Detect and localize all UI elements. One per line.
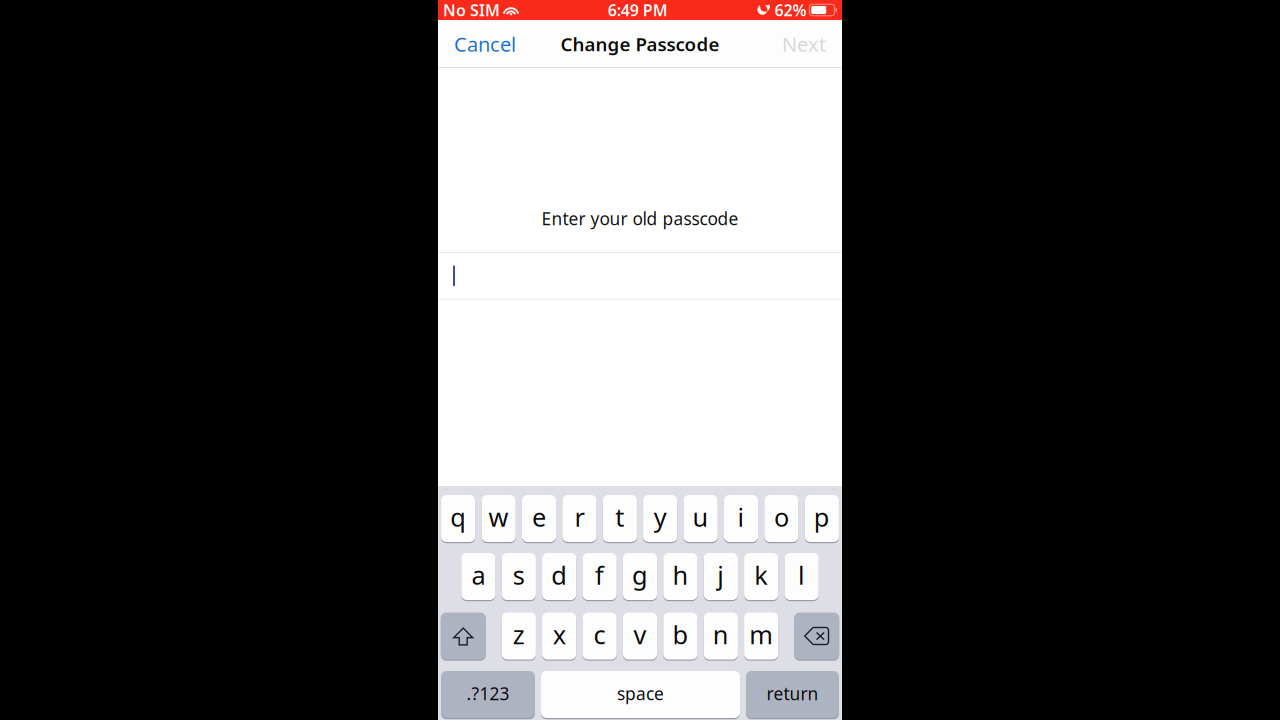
button[interactable]: z bbox=[502, 612, 536, 659]
staticText: h bbox=[672, 558, 688, 592]
button[interactable]: b bbox=[663, 612, 697, 659]
button[interactable]: q bbox=[441, 495, 475, 542]
staticText: f bbox=[595, 558, 604, 592]
button[interactable]: x bbox=[542, 612, 576, 659]
staticText: r bbox=[574, 500, 584, 534]
button[interactable]: Shift bbox=[441, 612, 486, 659]
staticText: a bbox=[471, 558, 485, 592]
staticText: u bbox=[693, 500, 709, 534]
button[interactable]: Cancel bbox=[446, 20, 524, 68]
button[interactable]: o bbox=[764, 495, 798, 542]
staticText: j bbox=[717, 558, 724, 592]
staticText: o bbox=[774, 500, 789, 534]
staticText: e bbox=[532, 500, 546, 534]
button[interactable]: k bbox=[744, 553, 778, 600]
staticText: Change Passcode bbox=[560, 32, 719, 56]
button[interactable] bbox=[438, 253, 842, 299]
button[interactable]: e bbox=[522, 495, 556, 542]
staticText: l bbox=[798, 558, 805, 592]
button[interactable]: j bbox=[704, 553, 738, 600]
button[interactable]: t bbox=[603, 495, 637, 542]
staticText: 6:49 PM bbox=[608, 0, 668, 21]
button[interactable]: Next bbox=[774, 20, 834, 68]
staticText: n bbox=[713, 618, 729, 651]
button[interactable]: r bbox=[562, 495, 596, 542]
button[interactable]: i bbox=[724, 495, 758, 542]
staticText: v bbox=[633, 618, 646, 651]
staticText: w bbox=[489, 500, 509, 534]
button[interactable]: return bbox=[746, 671, 839, 718]
button[interactable]: Delete bbox=[794, 612, 839, 659]
staticText: 62% bbox=[774, 0, 806, 21]
button[interactable]: w bbox=[481, 495, 516, 542]
staticText: .?123 bbox=[466, 682, 509, 705]
staticText: Enter your old passcode bbox=[541, 207, 738, 230]
staticText: Cancel bbox=[454, 31, 516, 57]
staticText: d bbox=[551, 558, 567, 592]
button[interactable]: f bbox=[582, 553, 617, 600]
button[interactable]: p bbox=[805, 495, 839, 542]
staticText: m bbox=[749, 618, 773, 651]
button[interactable]: u bbox=[683, 495, 718, 542]
button[interactable]: space bbox=[541, 671, 740, 718]
staticText: t bbox=[615, 500, 624, 534]
button[interactable]: s bbox=[502, 553, 536, 600]
button[interactable]: g bbox=[623, 553, 657, 600]
staticText: return bbox=[766, 682, 818, 705]
button[interactable]: h bbox=[663, 553, 697, 600]
button[interactable]: y bbox=[643, 495, 677, 542]
staticText: s bbox=[513, 558, 525, 592]
button[interactable]: d bbox=[542, 553, 576, 600]
staticText: b bbox=[672, 618, 688, 651]
staticText: Next bbox=[782, 31, 826, 57]
staticText: z bbox=[513, 618, 525, 651]
button[interactable]: l bbox=[784, 553, 819, 600]
button[interactable]: .?123 bbox=[441, 671, 535, 718]
staticText: x bbox=[553, 618, 566, 651]
staticText: c bbox=[594, 618, 606, 651]
button[interactable]: n bbox=[704, 612, 738, 659]
button[interactable]: m bbox=[744, 612, 778, 659]
button[interactable]: v bbox=[623, 612, 657, 659]
staticText: No SIM bbox=[443, 0, 500, 21]
staticText: g bbox=[632, 558, 648, 592]
staticText: q bbox=[450, 500, 466, 534]
staticText: p bbox=[814, 500, 830, 534]
button[interactable]: c bbox=[582, 612, 617, 659]
staticText: k bbox=[754, 558, 768, 592]
staticText: i bbox=[737, 500, 744, 534]
button[interactable]: a bbox=[461, 553, 495, 600]
staticText: space bbox=[617, 682, 664, 705]
staticText: y bbox=[654, 500, 667, 534]
